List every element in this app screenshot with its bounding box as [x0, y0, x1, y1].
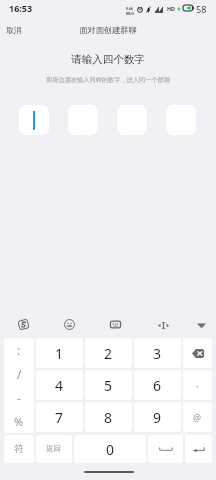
button[interactable]: Move cursor	[150, 314, 176, 336]
button[interactable]: 7	[36, 402, 83, 432]
button[interactable]: %	[4, 410, 34, 433]
staticText: KB/S	[126, 11, 134, 16]
staticText: @	[193, 411, 202, 423]
button[interactable]: Backspace	[183, 338, 212, 368]
staticText: 7	[55, 408, 64, 427]
button[interactable]: Keyboard layout	[102, 313, 128, 335]
staticText: 返回	[46, 444, 62, 454]
button[interactable]: 取消	[0, 21, 30, 39]
staticText: 3	[153, 344, 162, 363]
staticText: 符	[14, 443, 24, 455]
staticText: :	[17, 342, 21, 358]
button[interactable]: 3	[134, 338, 181, 368]
button[interactable]: 9	[134, 402, 181, 432]
button[interactable]: Emoji	[56, 313, 82, 335]
staticText: HD	[167, 5, 176, 12]
staticText: 6	[153, 376, 162, 395]
staticText: 面对面创建群聊	[0, 25, 216, 35]
button[interactable]: 4	[36, 370, 83, 400]
button[interactable]: 0	[74, 435, 146, 463]
button[interactable]: 返回	[36, 435, 72, 463]
button[interactable]: 1	[36, 338, 83, 368]
button[interactable]: 2	[85, 338, 132, 368]
button[interactable]: :	[4, 338, 34, 362]
button[interactable]: Space	[148, 435, 183, 463]
staticText: -	[17, 390, 21, 406]
staticText: 取消	[6, 25, 22, 35]
staticText: 0	[106, 440, 115, 459]
staticText: ·	[196, 378, 199, 393]
staticText: 16:53	[9, 2, 33, 14]
button[interactable]: 8	[85, 402, 132, 432]
button[interactable]: Enter	[185, 435, 212, 463]
staticText: 58	[196, 3, 207, 15]
button[interactable]: Hide keyboard	[188, 314, 214, 336]
staticText: 请输入四个数字	[0, 53, 216, 66]
staticText: 2	[104, 344, 113, 363]
staticText: 1	[55, 344, 64, 363]
button[interactable]: -	[4, 386, 34, 410]
staticText: 5	[104, 376, 113, 395]
button[interactable]: @	[183, 402, 212, 432]
staticText: 9	[153, 408, 162, 427]
button[interactable]: ·	[183, 370, 212, 400]
staticText: /	[17, 366, 22, 382]
staticText: 0.64	[126, 6, 133, 11]
button[interactable]: 6	[134, 370, 181, 400]
staticText: %	[14, 414, 24, 429]
button[interactable]: 5	[85, 370, 132, 400]
button[interactable]: Input method	[10, 313, 36, 335]
staticText: 和身边朋友输入同样的数字，进入同一个群聊	[0, 76, 216, 84]
staticText: 4	[55, 376, 64, 395]
button[interactable]: 符	[4, 435, 34, 463]
staticText: 8	[104, 408, 113, 427]
button[interactable]: /	[4, 362, 34, 386]
button[interactable]	[19, 105, 49, 135]
